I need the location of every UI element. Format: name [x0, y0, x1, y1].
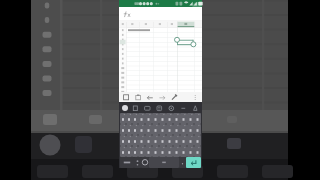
- button[interactable]: Copy: [120, 92, 132, 102]
- button[interactable]: Undo: [144, 92, 156, 102]
- button[interactable]: Key: [159, 124, 166, 135]
- button[interactable]: Key: [166, 113, 173, 124]
- button[interactable]: Sticker: [155, 104, 163, 112]
- button[interactable]: Theme: [179, 104, 187, 112]
- button[interactable]: Key: [145, 124, 152, 135]
- button[interactable]: Key: [173, 124, 180, 135]
- button[interactable]: Key: [152, 146, 159, 157]
- button[interactable]: Key: [120, 135, 126, 146]
- button[interactable]: Key: [187, 135, 194, 146]
- button[interactable]: Key: [180, 113, 187, 124]
- button[interactable]: Key: [194, 113, 201, 124]
- button[interactable]: Key: [138, 113, 145, 124]
- button[interactable]: Key: [120, 124, 126, 135]
- button[interactable]: Paste: [132, 92, 144, 102]
- button[interactable]: Enter: [186, 157, 201, 168]
- button[interactable]: More: [191, 104, 199, 112]
- button[interactable]: Key: [152, 113, 159, 124]
- button[interactable]: Key: [138, 124, 145, 135]
- button[interactable]: Key: [132, 113, 138, 124]
- button[interactable]: Key: [187, 113, 194, 124]
- button[interactable]: Key: [180, 146, 187, 157]
- button[interactable]: Format: [168, 92, 180, 102]
- button[interactable]: Key: [159, 146, 166, 157]
- button[interactable]: Key: [138, 135, 145, 146]
- button[interactable]: Key: [132, 135, 138, 146]
- button[interactable]: Key: [132, 124, 138, 135]
- button[interactable]: Key: [126, 124, 132, 135]
- button[interactable]: Key: [166, 124, 173, 135]
- button[interactable]: Key: [145, 146, 152, 157]
- button[interactable]: Space: [149, 157, 179, 168]
- button[interactable]: Key: [180, 124, 187, 135]
- button[interactable]: Settings: [167, 104, 175, 112]
- button[interactable]: Period: [179, 157, 186, 168]
- button[interactable]: Key: [159, 113, 166, 124]
- button[interactable]: Key: [132, 146, 138, 157]
- button[interactable]: Redo: [156, 92, 168, 102]
- button[interactable]: Key: [120, 146, 126, 157]
- button[interactable]: Key: [166, 146, 173, 157]
- button[interactable]: Key: [194, 146, 201, 157]
- button[interactable]: Key: [138, 146, 145, 157]
- button[interactable]: Key: [166, 135, 173, 146]
- button[interactable]: Key: [173, 146, 180, 157]
- button[interactable]: GIF: [143, 104, 151, 112]
- button[interactable]: Key: [120, 113, 126, 124]
- button[interactable]: Key: [173, 135, 180, 146]
- button[interactable]: More options: [189, 92, 201, 102]
- button[interactable]: Clipboard: [131, 104, 139, 112]
- button[interactable]: Key: [152, 124, 159, 135]
- button[interactable]: Key: [159, 135, 166, 146]
- button[interactable]: Key: [145, 135, 152, 146]
- button[interactable]: Key: [194, 135, 201, 146]
- button[interactable]: Key: [194, 124, 201, 135]
- button[interactable]: Key: [126, 135, 132, 146]
- button[interactable]: Emoji: [141, 157, 149, 168]
- button[interactable]: Google: [122, 105, 128, 111]
- button[interactable]: Key: [187, 124, 194, 135]
- button[interactable]: Key: [152, 135, 159, 146]
- button[interactable]: Key: [126, 146, 132, 157]
- button[interactable]: Key: [180, 135, 187, 146]
- button[interactable]: Settings: [134, 157, 141, 168]
- button[interactable]: Key: [173, 113, 180, 124]
- button[interactable]: Symbols: [120, 157, 134, 168]
- button[interactable]: Key: [187, 146, 194, 157]
- button[interactable]: Key: [145, 113, 152, 124]
- button[interactable]: Key: [126, 113, 132, 124]
